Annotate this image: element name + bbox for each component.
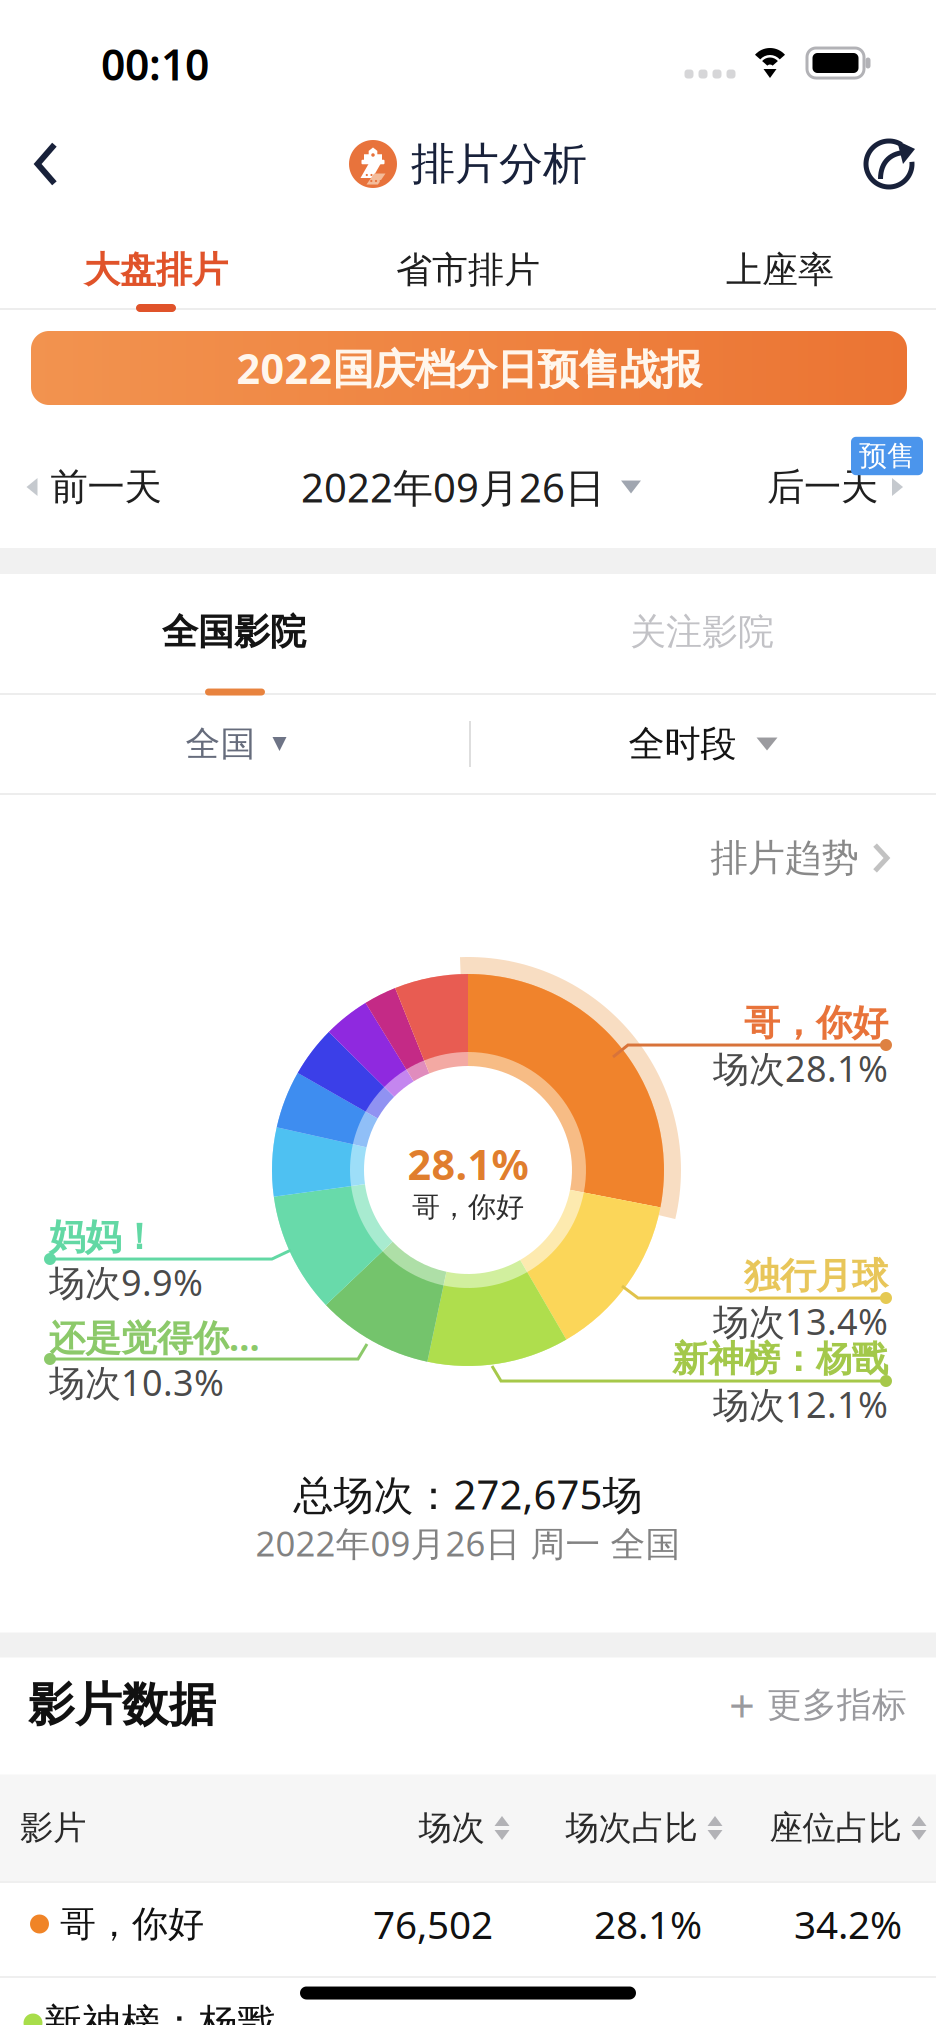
staticText: 影片 bbox=[20, 1807, 86, 1848]
button[interactable]: 全时段 bbox=[553, 695, 853, 793]
staticText: 预售 bbox=[859, 439, 915, 473]
staticText: 省市排片 bbox=[396, 248, 540, 292]
button[interactable]: 全国影院 bbox=[0, 574, 468, 694]
staticText: 座位占比 bbox=[769, 1807, 901, 1848]
staticText: 哥，你好 bbox=[412, 1190, 524, 1224]
staticText: 上座率 bbox=[726, 248, 834, 292]
staticText: 更多指标 bbox=[767, 1684, 907, 1726]
staticText: 场次 bbox=[418, 1807, 484, 1848]
staticText: 大盘排片 bbox=[84, 248, 228, 292]
button[interactable]: Back bbox=[0, 116, 92, 212]
staticText: 新神榜：杨戬 bbox=[672, 1337, 888, 1381]
staticText: 场次28.1% bbox=[713, 1044, 888, 1092]
staticText: 全国影院 bbox=[162, 610, 306, 654]
button[interactable]: Share bbox=[840, 116, 936, 212]
staticText: 妈妈！ bbox=[49, 1215, 157, 1259]
button[interactable]: 省市排片 bbox=[312, 227, 624, 313]
button[interactable]: 座位占比 bbox=[761, 1776, 934, 1880]
button[interactable]: 2022年09月26日 bbox=[285, 436, 657, 537]
staticText: 28.1% bbox=[407, 1137, 528, 1191]
staticText: 排片分析 bbox=[411, 137, 587, 191]
staticText: 76,502 bbox=[373, 1898, 493, 1950]
staticText: 2022国庆档分日预售战报 bbox=[236, 341, 701, 395]
staticText: 前一天 bbox=[50, 464, 161, 510]
staticText: 34.2% bbox=[794, 1898, 902, 1950]
staticText: 场次占比 bbox=[565, 1807, 697, 1848]
staticText: 影片数据 bbox=[28, 1676, 216, 1734]
button[interactable]: 后一天 bbox=[741, 440, 936, 534]
staticText: 场次9.9% bbox=[49, 1258, 203, 1306]
staticText: 新神榜：杨戬 bbox=[43, 1999, 277, 2025]
staticText: 场次12.1% bbox=[713, 1380, 888, 1428]
button[interactable]: 大盘排片 bbox=[0, 227, 312, 313]
staticText: 哥，你好 bbox=[744, 1001, 888, 1045]
button[interactable]: + bbox=[711, 1657, 925, 1753]
button[interactable]: 上座率 bbox=[624, 227, 936, 313]
staticText: 场次13.4% bbox=[713, 1297, 888, 1345]
staticText: 总场次：272,675场 bbox=[293, 1467, 642, 1520]
button[interactable]: 排片趋势 bbox=[692, 813, 919, 903]
button[interactable]: 2022国庆档分日预售战报 bbox=[31, 331, 907, 405]
button[interactable]: 前一天 bbox=[0, 440, 187, 534]
button[interactable]: 关注影院 bbox=[468, 574, 936, 694]
staticText: 2022年09月26日 bbox=[301, 460, 605, 513]
button[interactable]: 哥，你好 bbox=[0, 1876, 936, 1976]
staticText: 全国 bbox=[185, 723, 255, 765]
staticText: 2022年09月26日 周一 全国 bbox=[255, 1520, 680, 1566]
staticText: 00:10 bbox=[101, 36, 209, 92]
staticText: 还是觉得你… bbox=[49, 1313, 260, 1361]
button[interactable]: 场次 bbox=[410, 1776, 517, 1880]
button[interactable]: 全国 bbox=[86, 695, 386, 793]
staticText: 28.1% bbox=[594, 1898, 702, 1950]
staticText: 哥，你好 bbox=[60, 1902, 204, 1946]
staticText: 关注影院 bbox=[630, 610, 774, 654]
staticText: 排片趋势 bbox=[710, 835, 858, 881]
staticText: 场次10.3% bbox=[49, 1358, 224, 1406]
button[interactable]: 场次占比 bbox=[557, 1776, 730, 1880]
staticText: 后一天 bbox=[767, 464, 878, 510]
staticText: 全时段 bbox=[628, 722, 736, 766]
staticText: 独行月球 bbox=[744, 1254, 888, 1298]
staticText: + bbox=[729, 1675, 755, 1735]
